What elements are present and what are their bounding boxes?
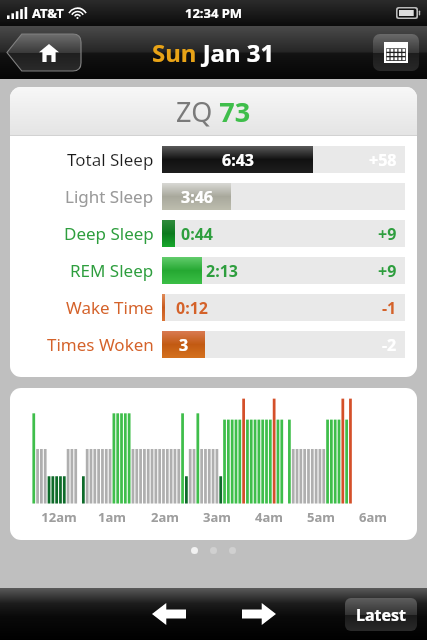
button[interactable]: Deep Sleep [10,215,417,252]
button[interactable]: Next [232,594,286,634]
staticText: 3:46 [181,186,213,208]
staticText: 3am [203,508,231,526]
staticText: Light Sleep [65,185,154,208]
button[interactable]: Wake Time [10,289,417,326]
staticText: 12am [41,508,77,526]
staticText: Deep Sleep [64,222,154,245]
button[interactable]: 12am [10,388,417,540]
staticText: -2 [382,334,397,356]
button[interactable]: Total Sleep [10,141,417,178]
staticText: +9 [378,223,397,245]
button[interactable]: Calendar [373,34,419,71]
staticText: +58 [369,149,397,171]
button[interactable]: Home [7,34,81,71]
staticText: Total Sleep [67,148,154,171]
staticText: 5am [307,508,335,526]
staticText: AT&T [32,4,64,22]
staticText: 12:34 PM [185,4,243,22]
staticText: Sun Jan 31 [152,36,275,69]
staticText: 2am [151,508,179,526]
staticText: 1am [98,508,126,526]
staticText: 0:44 [181,223,213,245]
button[interactable]: Previous [142,594,196,634]
button[interactable]: Latest [345,598,417,631]
button[interactable]: Times Woken [10,326,417,363]
staticText: REM Sleep [70,259,154,282]
staticText: ZQ 73 [176,93,251,130]
staticText: 4am [255,508,283,526]
staticText: Wake Time [66,296,154,319]
staticText: 0:12 [176,297,208,319]
button[interactable]: REM Sleep [10,252,417,289]
staticText: 6:43 [222,149,254,171]
staticText: Times Woken [47,333,154,356]
staticText: -1 [382,297,397,319]
button[interactable]: Light Sleep [10,178,417,215]
staticText: 6am [359,508,387,526]
staticText: +9 [378,260,397,282]
staticText: 3 [179,334,189,356]
staticText: 2:13 [206,260,238,282]
staticText: Latest [356,604,407,626]
